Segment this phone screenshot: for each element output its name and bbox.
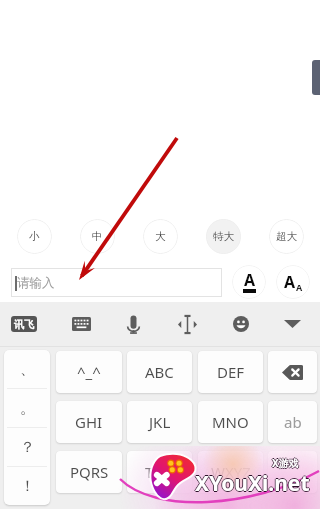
button[interactable]: [268, 351, 317, 393]
staticText: 讯飞: [14, 318, 34, 331]
button[interactable]: DEF: [198, 351, 263, 393]
staticText: PQRS: [70, 462, 109, 482]
button[interactable]: ？: [4, 428, 50, 466]
button[interactable]: Keyboard: [69, 312, 94, 336]
staticText: ABC: [145, 362, 174, 382]
staticText: XYouXi.net: [195, 469, 310, 498]
button[interactable]: 请输入: [11, 268, 222, 297]
button[interactable]: Text size: [276, 265, 310, 299]
button[interactable]: Emoji: [228, 312, 253, 336]
staticText: WXYZ: [211, 462, 251, 482]
staticText: GHI: [75, 412, 103, 432]
staticText: 中: [92, 230, 103, 243]
staticText: 请输入: [17, 275, 55, 291]
staticText: X游戏: [272, 455, 299, 469]
staticText: 、: [20, 360, 35, 379]
staticText: ！: [20, 477, 35, 496]
staticText: X游戏: [272, 457, 299, 471]
button[interactable]: ABC: [127, 351, 192, 393]
button[interactable]: 小: [17, 219, 52, 254]
button[interactable]: GHI: [56, 401, 122, 443]
button[interactable]: 。: [4, 389, 50, 427]
button[interactable]: Hide keyboard: [280, 312, 305, 336]
staticText: ^_^: [77, 362, 101, 382]
button[interactable]: 中: [80, 219, 115, 254]
button[interactable]: Move cursor: [175, 312, 200, 336]
staticText: XYouXi.net: [195, 468, 310, 497]
button[interactable]: MNO: [198, 401, 263, 443]
staticText: TUV: [145, 462, 174, 482]
button[interactable]: ！: [4, 467, 50, 505]
button[interactable]: PQRS: [56, 451, 122, 493]
button[interactable]: 超大: [269, 219, 304, 254]
staticText: X游戏: [271, 456, 298, 470]
staticText: XYouXi.net: [194, 469, 309, 498]
staticText: DEF: [217, 362, 245, 382]
staticText: A: [284, 271, 296, 293]
button[interactable]: 、: [4, 350, 50, 388]
staticText: 小: [29, 230, 40, 243]
staticText: A: [296, 281, 303, 293]
staticText: X游戏: [273, 456, 300, 470]
button[interactable]: Text colour: [232, 265, 266, 299]
button[interactable]: Voice input: [121, 312, 146, 336]
staticText: X游戏: [272, 456, 299, 470]
button[interactable]: JKL: [127, 401, 192, 443]
button[interactable]: 大: [143, 219, 178, 254]
button[interactable]: ab: [268, 401, 317, 443]
staticText: 。: [20, 399, 35, 418]
button[interactable]: ^_^: [56, 351, 122, 393]
staticText: MNO: [212, 412, 249, 432]
staticText: XYouXi.net: [196, 469, 311, 498]
staticText: A: [244, 269, 256, 291]
staticText: XYouXi.net: [195, 470, 310, 499]
staticText: 超大: [276, 230, 297, 243]
staticText: ？: [20, 438, 35, 457]
staticText: ab: [284, 412, 302, 432]
button[interactable]: 讯飞: [11, 316, 37, 332]
staticText: 特大: [213, 230, 234, 243]
staticText: 大: [155, 230, 166, 243]
button[interactable]: TUV: [127, 451, 192, 493]
staticText: JKL: [149, 412, 171, 432]
button[interactable]: WXYZ: [198, 451, 263, 493]
button[interactable]: 特大: [206, 219, 241, 254]
button[interactable]: [268, 451, 317, 493]
